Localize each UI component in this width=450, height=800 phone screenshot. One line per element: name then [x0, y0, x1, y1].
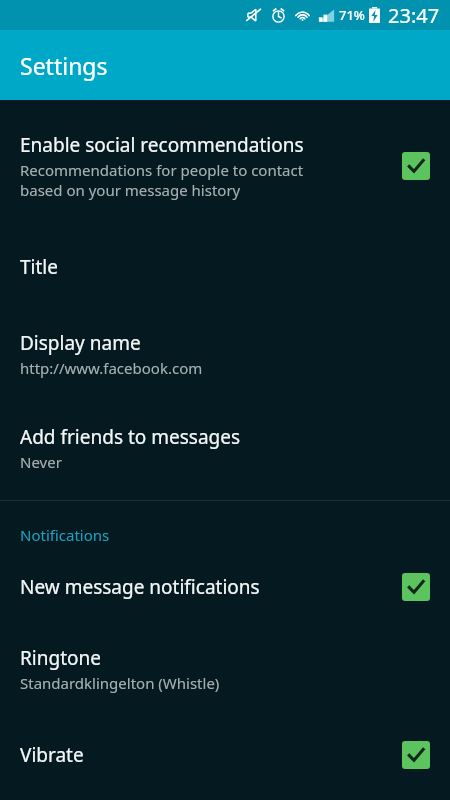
staticText: Notifications	[20, 525, 110, 545]
staticText: 71%	[339, 6, 365, 24]
staticText: Standardklingelton (Whistle)	[20, 673, 220, 693]
button[interactable]: Toggle Vibrate	[402, 741, 430, 769]
button[interactable]: Title	[0, 226, 450, 308]
staticText: Vibrate	[20, 742, 84, 768]
button[interactable]: Vibrate	[0, 719, 450, 791]
staticText: Never	[20, 452, 62, 472]
staticText: 23:47	[388, 2, 440, 29]
button[interactable]: Add friends to messages	[0, 402, 450, 500]
staticText: Settings	[20, 50, 108, 81]
button[interactable]: Toggle Enable social recommendations	[402, 152, 430, 180]
staticText: Recommendations for people to contact ba…	[20, 160, 304, 200]
button[interactable]: Display name	[0, 308, 450, 402]
staticText: Ringtone	[20, 645, 101, 671]
button[interactable]: Toggle New message notifications	[402, 573, 430, 601]
staticText: http://www.facebook.com	[20, 358, 203, 378]
staticText: Enable social recommendations	[20, 132, 304, 158]
staticText: Title	[20, 254, 58, 280]
staticText: Display name	[20, 330, 141, 356]
button[interactable]: Ringtone	[0, 625, 450, 719]
staticText: New message notifications	[20, 574, 260, 600]
button[interactable]: Enable social recommendations	[0, 100, 450, 226]
button[interactable]: Settings	[0, 30, 450, 100]
staticText: Add friends to messages	[20, 424, 241, 450]
button[interactable]: New message notifications	[0, 559, 450, 625]
